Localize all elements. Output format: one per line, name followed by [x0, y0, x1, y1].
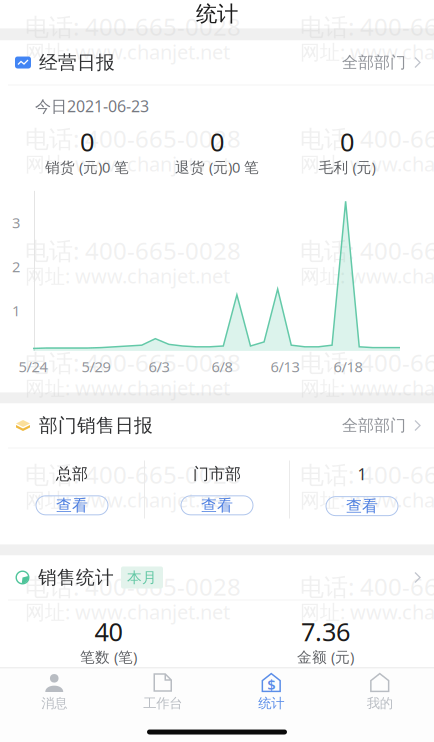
staticText: 我的: [367, 695, 393, 711]
staticText: 网址: www.chanjet.net: [300, 374, 434, 401]
staticText: 0: [210, 125, 224, 158]
staticText: 0: [80, 125, 94, 158]
staticText: 电话: 400-665-0028: [25, 10, 241, 42]
staticText: 网址: www.chanjet.net: [25, 374, 230, 401]
staticText: 6/8: [211, 357, 232, 376]
staticText: 网址: www.chanjet.net: [300, 38, 434, 65]
button[interactable]: 我的: [325, 668, 434, 715]
staticText: 6/13: [270, 357, 299, 376]
staticText: 网址: www.chanjet.net: [300, 150, 434, 177]
staticText: 全部部门: [342, 53, 406, 72]
staticText: 今日2021-06-23: [35, 95, 149, 117]
button[interactable]: 查看: [181, 496, 253, 515]
staticText: 统计: [258, 695, 284, 711]
button[interactable]: 查看: [326, 497, 398, 516]
staticText: 销货 (元)0 笔: [45, 157, 129, 177]
staticText: 退货 (元)0 笔: [175, 157, 259, 177]
staticText: 3: [12, 213, 20, 232]
staticText: 查看: [346, 496, 378, 516]
staticText: 网址: www.chanjet.net: [300, 486, 434, 513]
staticText: 电话: 400-665-0028: [300, 122, 434, 154]
staticText: 网址: www.chanjet.net: [25, 262, 230, 289]
staticText: 毛利 (元): [318, 157, 375, 177]
staticText: 统计: [196, 1, 238, 27]
staticText: 1: [12, 301, 20, 320]
staticText: 7.36: [301, 614, 350, 648]
staticText: 5/29: [81, 357, 110, 376]
staticText: 工作台: [143, 695, 182, 711]
staticText: 网址: www.chanjet.net: [25, 486, 230, 513]
staticText: 电话: 400-665-0028: [300, 458, 434, 490]
staticText: 网址: www.chanjet.net: [300, 262, 434, 289]
staticText: 6/18: [333, 357, 362, 376]
staticText: 门市部: [193, 464, 241, 484]
staticText: 1: [357, 463, 366, 485]
staticText: 电话: 400-665-0028: [300, 570, 434, 602]
staticText: 网址: www.chanjet.net: [25, 150, 230, 177]
staticText: 金额 (元): [297, 647, 354, 667]
staticText: 电话: 400-665-0028: [300, 682, 434, 714]
staticText: 电话: 400-665-0028: [300, 346, 434, 378]
button[interactable]: 工作台: [108, 668, 217, 715]
staticText: 总部: [56, 464, 88, 484]
button[interactable]: 部门销售日报: [0, 403, 434, 447]
staticText: 笔数 (笔): [80, 647, 137, 667]
staticText: 查看: [56, 495, 88, 515]
staticText: 2: [12, 257, 20, 276]
staticText: 电话: 400-665-0028: [25, 234, 241, 266]
staticText: 0: [340, 125, 354, 158]
staticText: 经营日报: [39, 51, 115, 74]
staticText: 40: [94, 614, 122, 648]
staticText: 本月: [127, 568, 157, 586]
staticText: 网址: www.chanjet.net: [25, 598, 230, 625]
staticText: 查看: [201, 495, 233, 515]
button[interactable]: 消息: [0, 668, 108, 715]
staticText: 网址: www.chanjet.net: [25, 710, 230, 737]
staticText: 电话: 400-665-0028: [300, 234, 434, 266]
staticText: 电话: 400-665-0028: [25, 346, 241, 378]
staticText: 电话: 400-665-0028: [25, 122, 241, 154]
staticText: 消息: [41, 695, 67, 711]
staticText: 网址: www.chanjet.net: [25, 38, 230, 65]
button[interactable]: 经营日报: [0, 40, 434, 84]
staticText: 全部部门: [342, 416, 406, 435]
staticText: 电话: 400-665-0028: [25, 682, 241, 714]
staticText: 部门销售日报: [39, 414, 153, 437]
staticText: 6/3: [148, 357, 169, 376]
staticText: 销售统计: [38, 566, 114, 589]
staticText: 网址: www.chanjet.net: [300, 598, 434, 625]
staticText: 电话: 400-665-0028: [25, 458, 241, 490]
staticText: $: [267, 675, 275, 694]
staticText: 5/24: [18, 357, 47, 376]
staticText: 电话: 400-665-0028: [25, 570, 241, 602]
staticText: 电话: 400-665-0028: [300, 10, 434, 42]
button[interactable]: $: [217, 668, 325, 715]
button[interactable]: 销售统计: [0, 555, 434, 599]
button[interactable]: 查看: [36, 496, 108, 515]
